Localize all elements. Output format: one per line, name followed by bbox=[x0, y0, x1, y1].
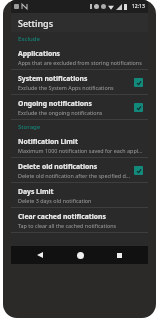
staticText: Storage bbox=[18, 123, 41, 131]
button[interactable]: Settings bbox=[11, 13, 148, 32]
button[interactable]: Days Limit bbox=[11, 183, 148, 207]
other: Toggle System notifications bbox=[134, 78, 143, 87]
staticText: Days Limit bbox=[18, 187, 54, 196]
staticText: Clear cached notifications bbox=[18, 212, 106, 221]
staticText: Delete old notifications bbox=[18, 162, 98, 171]
staticText: Ongoing notifications bbox=[18, 99, 92, 108]
staticText: 12:13 bbox=[132, 3, 145, 10]
button[interactable]: Ongoing notifications bbox=[11, 95, 148, 119]
staticText: System notifications bbox=[18, 74, 88, 83]
other: Toggle Delete old notifications bbox=[134, 166, 143, 175]
staticText: Maximum 1000 notification saved for each… bbox=[18, 147, 143, 154]
button[interactable]: Notification Limit bbox=[11, 133, 148, 157]
button[interactable]: Delete old notifications bbox=[11, 158, 148, 182]
button[interactable]: Recents bbox=[108, 246, 130, 264]
staticText: Delete old notification after the specif… bbox=[18, 172, 130, 179]
staticText: Notification Limit bbox=[18, 137, 78, 146]
button[interactable]: Applications bbox=[11, 45, 148, 69]
staticText: Exclude the System Apps notifications bbox=[18, 84, 114, 91]
staticText: Exclude the ongoing notifications bbox=[18, 109, 103, 116]
staticText: Applications bbox=[18, 49, 60, 58]
staticText: Tap to clear all the cached notification… bbox=[18, 222, 117, 229]
staticText: Apps that are excluded from storing noti… bbox=[18, 59, 142, 66]
button[interactable]: System notifications bbox=[11, 70, 148, 94]
button[interactable]: Back bbox=[29, 246, 51, 264]
button[interactable]: Home bbox=[69, 246, 91, 264]
staticText: Exclude bbox=[18, 35, 40, 43]
button[interactable]: Clear cached notifications bbox=[11, 208, 148, 232]
other: Toggle Ongoing notifications bbox=[134, 103, 143, 112]
staticText: Settings bbox=[18, 17, 54, 29]
staticText: Delete 3 days old notification bbox=[18, 197, 92, 204]
